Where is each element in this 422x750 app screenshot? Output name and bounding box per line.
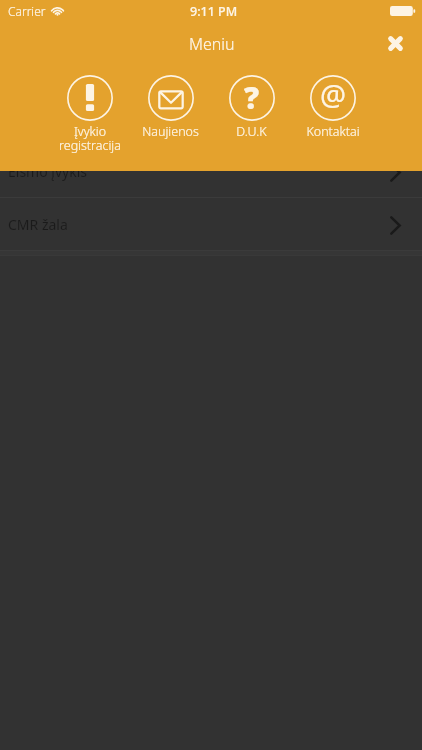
button[interactable]: Naujienos bbox=[130, 75, 211, 140]
button[interactable]: Close bbox=[371, 19, 419, 67]
staticText: D.U.K bbox=[236, 123, 267, 140]
button[interactable]: Įvykio registracija bbox=[49, 75, 130, 153]
staticText: Naujienos bbox=[142, 123, 199, 140]
staticText: ? bbox=[244, 77, 260, 118]
staticText: Eismo įvykis bbox=[8, 162, 87, 181]
staticText: 9:11 PM bbox=[190, 3, 238, 20]
button[interactable]: Eismo įvykis bbox=[0, 145, 422, 198]
button[interactable]: ? bbox=[211, 75, 292, 140]
button[interactable]: @ bbox=[292, 75, 373, 140]
staticText: CMR žala bbox=[8, 215, 68, 234]
staticText: Carrier bbox=[8, 3, 46, 19]
staticText: Kontaktai bbox=[306, 123, 360, 140]
staticText: Meniu bbox=[189, 33, 235, 55]
staticText: Įvykio registracija bbox=[59, 123, 121, 153]
staticText: @ bbox=[320, 75, 347, 114]
